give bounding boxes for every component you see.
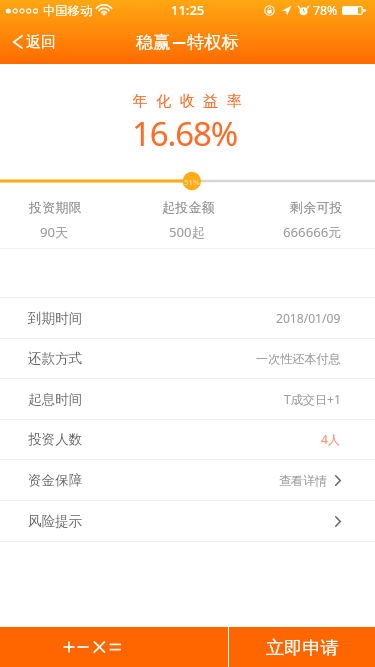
staticText: 一次性还本付息 xyxy=(256,351,341,366)
button[interactable]: Calculator xyxy=(0,627,228,667)
button[interactable]: 到期时间 xyxy=(0,298,375,339)
staticText: 到期时间 xyxy=(28,310,83,327)
staticText: 2018/01/09 xyxy=(276,310,341,326)
button[interactable]: 资金保障 xyxy=(0,460,375,501)
staticText: 立即申请 xyxy=(266,636,339,659)
staticText: 666666元 xyxy=(283,223,342,241)
staticText: 返回 xyxy=(26,33,56,52)
staticText: 剩余可投 xyxy=(290,199,343,216)
staticText: 查看详情 xyxy=(279,473,328,488)
staticText: 投资期限 xyxy=(29,199,82,216)
staticText: 投资人数 xyxy=(28,431,83,448)
staticText: 90天 xyxy=(40,223,69,241)
button[interactable]: 立即申请 xyxy=(229,627,375,667)
staticText: 资金保障 xyxy=(28,472,83,489)
staticText: T成交日+1 xyxy=(284,391,341,408)
staticText: 51% xyxy=(184,177,200,188)
button[interactable]: 投资人数 xyxy=(0,420,375,460)
button[interactable]: 起息时间 xyxy=(0,379,375,420)
staticText: 中国移动 xyxy=(43,3,93,18)
button[interactable]: 返回 xyxy=(0,20,68,64)
button[interactable]: 还款方式 xyxy=(0,339,375,379)
staticText: 还款方式 xyxy=(28,350,83,367)
staticText: 起息时间 xyxy=(28,391,83,408)
staticText: 起投金额 xyxy=(162,199,215,216)
staticText: 特权标 xyxy=(187,31,239,53)
staticText: 风险提示 xyxy=(28,513,83,530)
button[interactable]: 风险提示 xyxy=(0,501,375,542)
staticText: 78% xyxy=(313,2,338,19)
staticText: 年化收益率 xyxy=(4,92,375,111)
staticText: 11:25 xyxy=(171,1,205,19)
staticText: 稳赢 xyxy=(136,31,171,53)
staticText: 4人 xyxy=(321,431,341,448)
staticText: 16.68% xyxy=(0,111,372,156)
staticText: 500起 xyxy=(169,223,205,241)
